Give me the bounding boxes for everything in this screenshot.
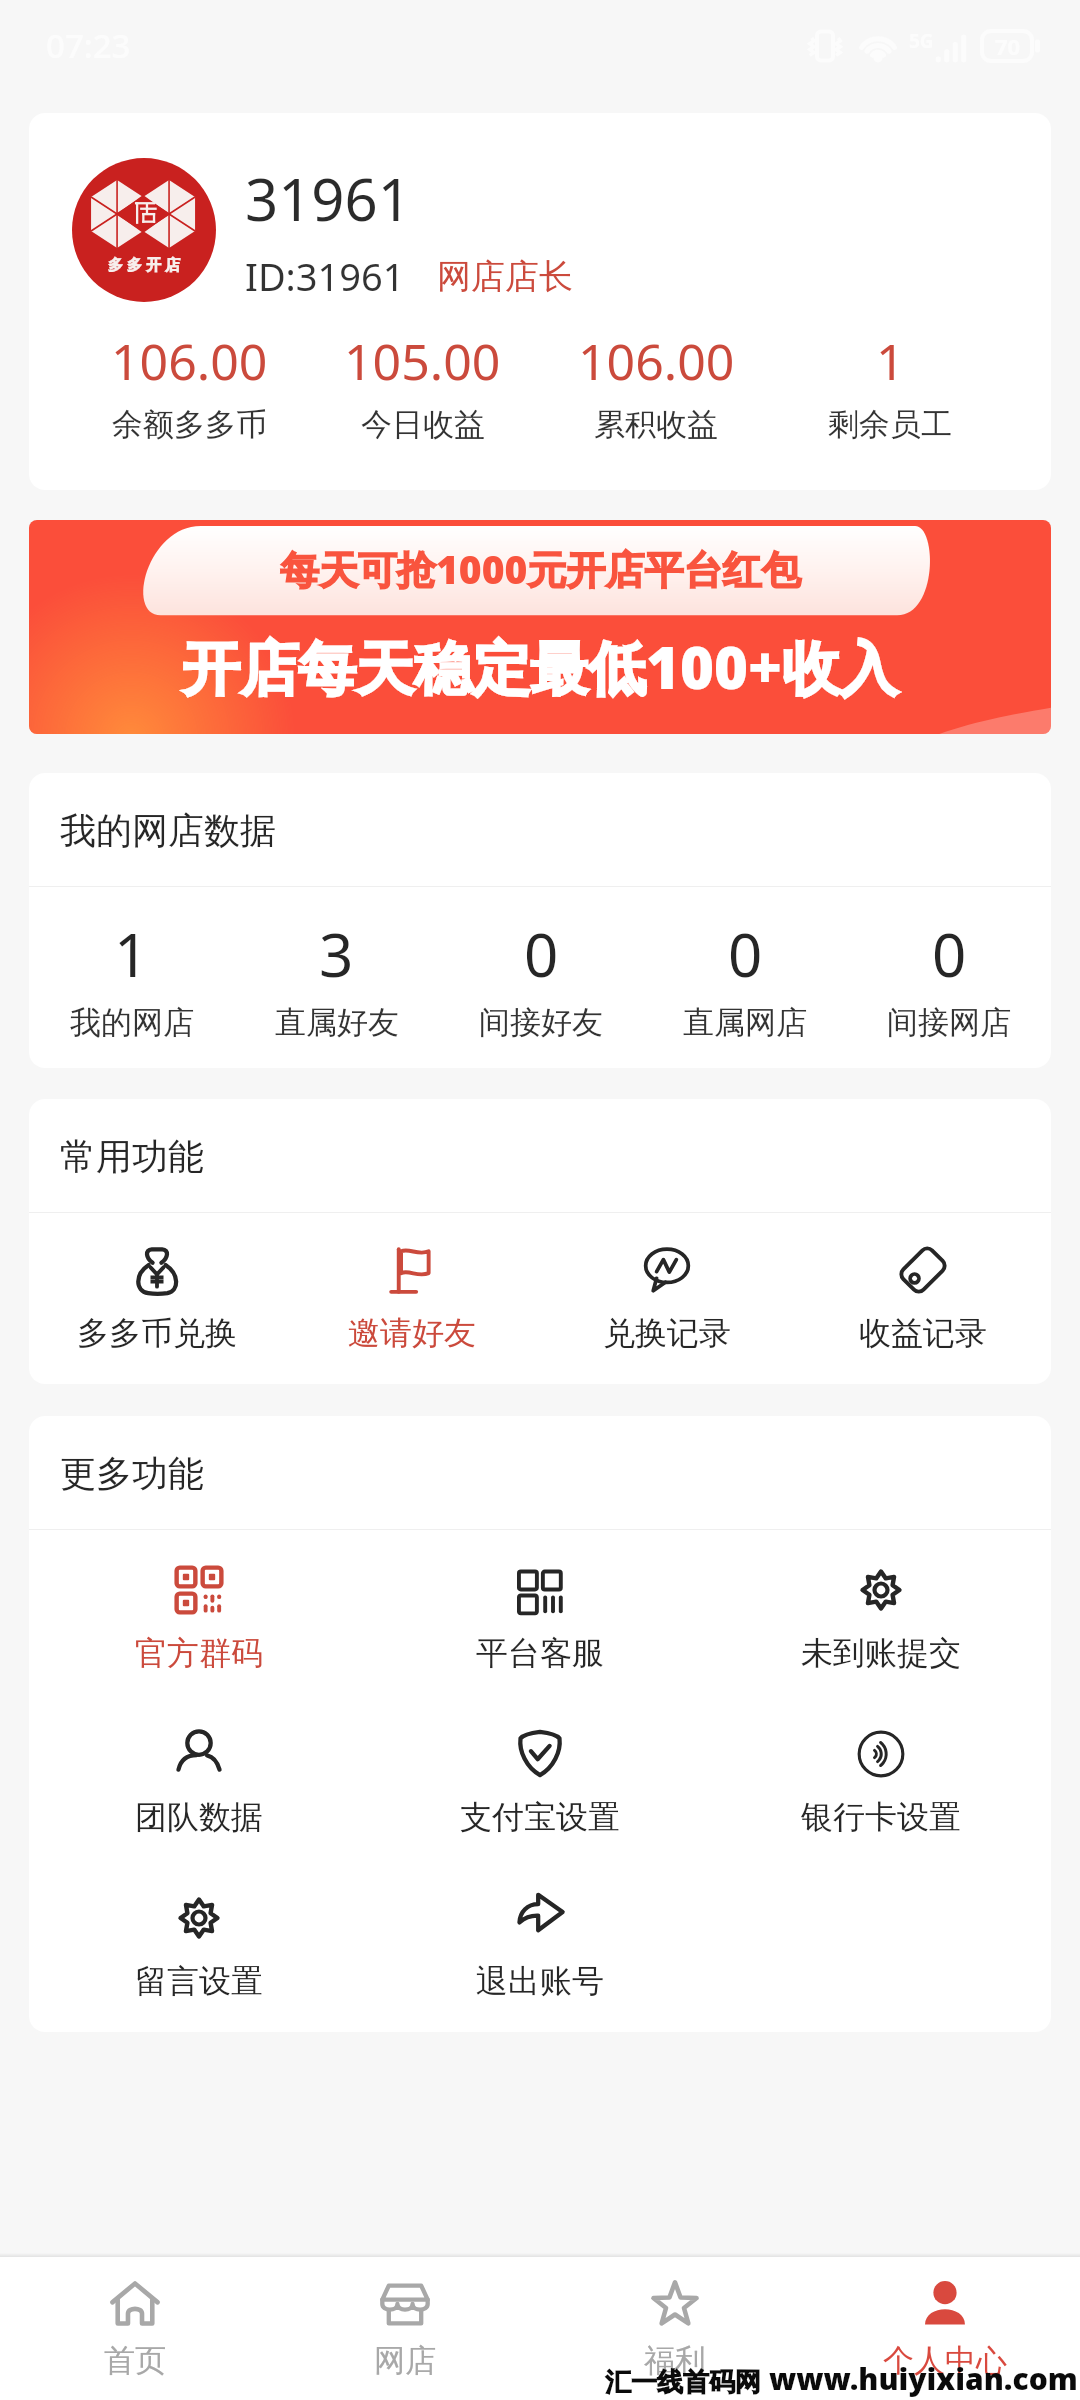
staticText: 0 (728, 913, 763, 995)
button[interactable]: 网店 (270, 2257, 540, 2400)
button[interactable]: 首页 (0, 2257, 270, 2400)
button[interactable]: 0 (643, 913, 847, 1042)
staticText: 今日收益 (361, 405, 485, 444)
staticText: 1 (876, 327, 905, 395)
staticText: 间接好友 (479, 1003, 603, 1042)
staticText: 累积收益 (594, 405, 718, 444)
staticText: 每天可抢1000元开店平台红包 (280, 542, 801, 595)
button[interactable]: 1 (773, 327, 1007, 444)
staticText: 我的网店 (70, 1003, 194, 1042)
staticText: 平台客服 (476, 1633, 604, 1673)
button[interactable]: 支付宝设置 (369, 1728, 710, 1837)
staticText: 多多币兑换 (77, 1313, 237, 1353)
staticText: 0 (932, 913, 967, 995)
staticText: 1 (114, 913, 149, 995)
staticText: 剩余员工 (828, 405, 952, 444)
button[interactable]: 0 (847, 913, 1051, 1042)
button[interactable]: 平台客服 (369, 1564, 710, 1673)
staticText: 0 (524, 913, 559, 995)
button[interactable]: 未到账提交 (710, 1564, 1051, 1673)
staticText: 留言设置 (135, 1961, 263, 2001)
staticText: 开店每天稳定最低100+收入 (182, 627, 898, 706)
staticText: 退出账号 (476, 1961, 604, 2001)
staticText: 收益记录 (859, 1313, 987, 1353)
button[interactable]: 邀请好友 (284, 1244, 539, 1353)
button[interactable]: 个人中心 (810, 2257, 1080, 2400)
staticText: 汇一线首码网 (605, 2366, 761, 2399)
staticText: 106.00 (578, 327, 735, 395)
button[interactable]: 官方群码 (29, 1564, 369, 1673)
button[interactable]: 1 (29, 913, 234, 1042)
button[interactable]: 收益记录 (795, 1244, 1051, 1353)
staticText: 常用功能 (60, 1134, 204, 1179)
button[interactable]: 银行卡设置 (710, 1728, 1051, 1837)
staticText: 间接网店 (887, 1003, 1011, 1042)
staticText: 个人中心 (883, 2341, 1007, 2380)
button[interactable]: 0 (439, 913, 643, 1042)
button[interactable]: 退出账号 (369, 1892, 710, 2001)
staticText: 团队数据 (135, 1797, 263, 1837)
button[interactable]: 福利 (540, 2257, 810, 2400)
staticText: 支付宝设置 (460, 1797, 620, 1837)
staticText: 直属网店 (683, 1003, 807, 1042)
staticText: 余额多多币 (112, 405, 267, 444)
button[interactable]: 留言设置 (29, 1892, 369, 2001)
staticText: 更多功能 (60, 1451, 204, 1496)
staticText: 105.00 (344, 327, 501, 395)
staticText: 31961 (245, 159, 411, 238)
button[interactable]: 团队数据 (29, 1728, 369, 1837)
staticText: ID:31961 (245, 250, 405, 302)
staticText: www.huiyixian.com (769, 2358, 1078, 2399)
staticText: 官方群码 (135, 1633, 263, 1673)
button[interactable]: 兑换记录 (539, 1244, 795, 1353)
staticText: 未到账提交 (801, 1633, 961, 1673)
button[interactable]: 105.00 (306, 327, 539, 444)
staticText: 邀请好友 (348, 1313, 476, 1353)
staticText: 我的网店数据 (60, 808, 276, 853)
button[interactable]: 多多币兑换 (29, 1244, 284, 1353)
staticText: 直属好友 (275, 1003, 399, 1042)
staticText: 网店店长 (437, 255, 573, 298)
staticText: 多多开店 (106, 256, 182, 275)
button[interactable]: 3 (234, 913, 439, 1042)
staticText: 银行卡设置 (801, 1797, 961, 1837)
staticText: 网店 (374, 2341, 436, 2380)
button[interactable]: 每天可抢1000元开店平台红包 (29, 520, 1051, 734)
staticText: 兑换记录 (603, 1313, 731, 1353)
staticText: 首页 (104, 2341, 166, 2380)
staticText: 106.00 (111, 327, 268, 395)
staticText: 福利 (644, 2341, 706, 2380)
staticText: 3 (319, 913, 354, 995)
button[interactable]: 106.00 (539, 327, 773, 444)
button[interactable]: 106.00 (73, 327, 306, 444)
